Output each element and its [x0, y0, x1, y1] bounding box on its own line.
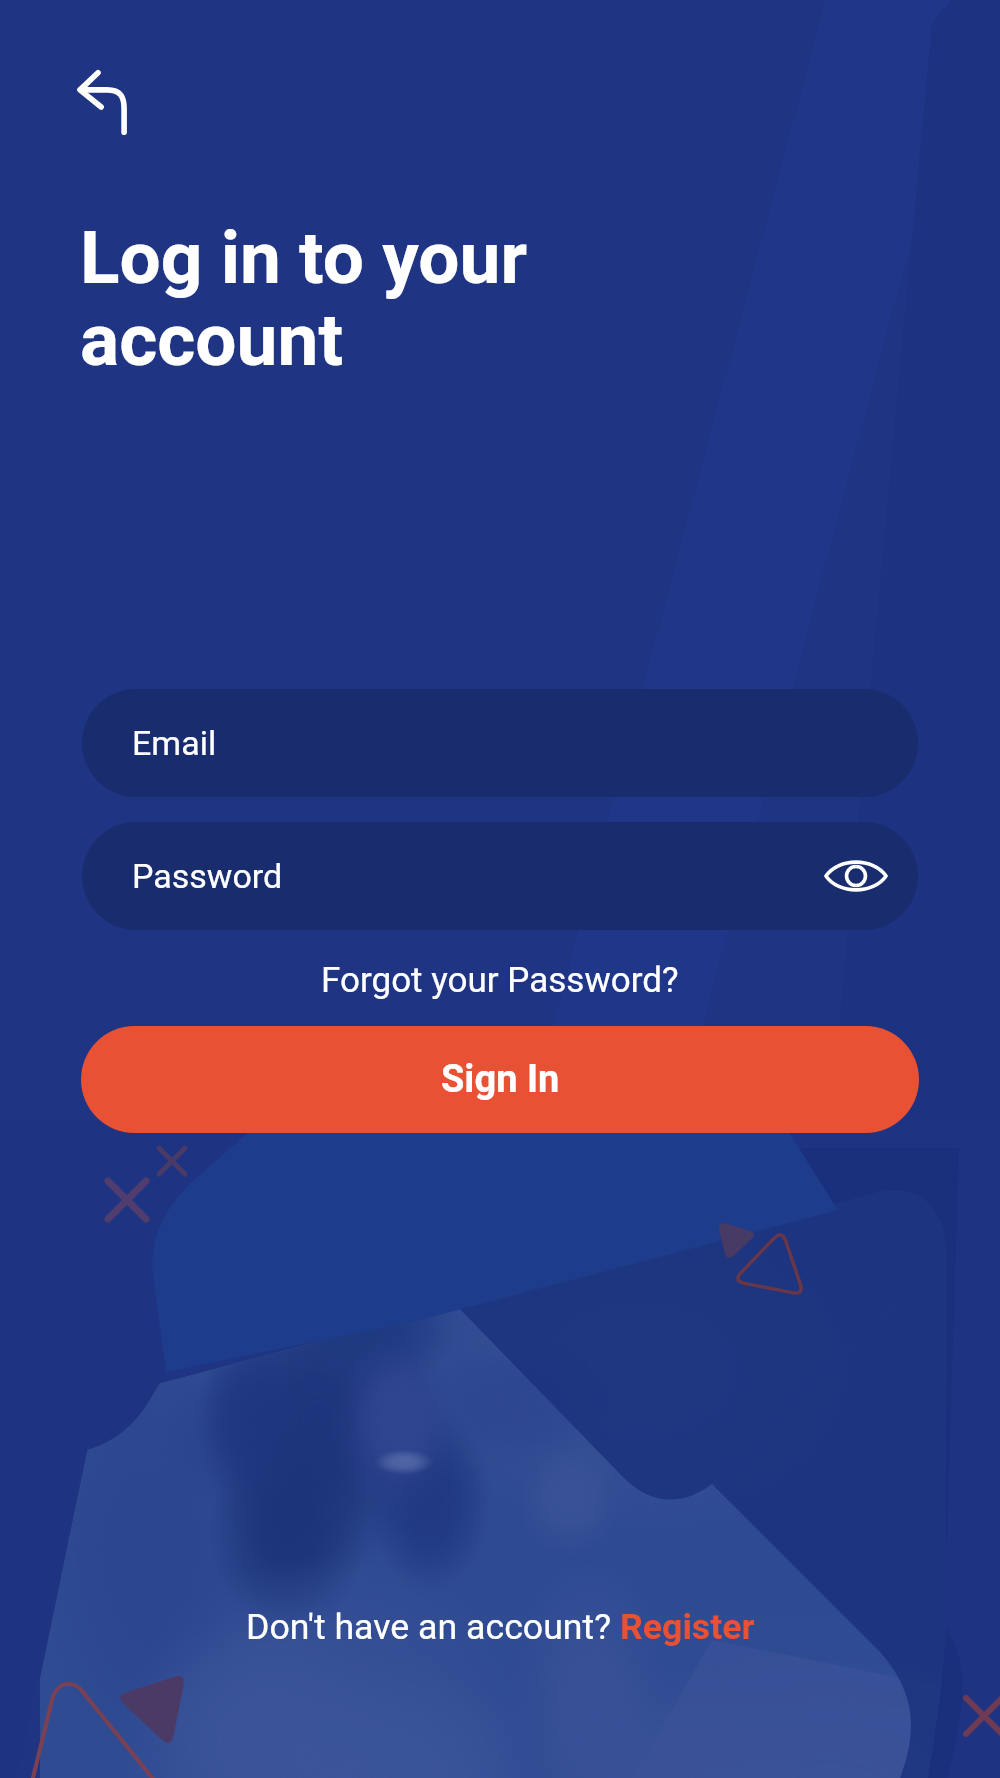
staticText: Password	[132, 856, 283, 896]
staticText: Sign In	[441, 1057, 560, 1102]
button[interactable]: Forgot your Password?	[307, 952, 693, 1009]
button[interactable]: Email	[82, 689, 918, 797]
button[interactable]: Password	[82, 822, 918, 930]
button[interactable]: Back	[62, 48, 152, 138]
button[interactable]: Show password	[820, 840, 892, 912]
staticText: Log in to your account	[80, 215, 528, 383]
button[interactable]: Sign In	[81, 1026, 919, 1133]
staticText: Email	[132, 723, 217, 763]
button[interactable]: Don't have an account? Register	[232, 1598, 769, 1656]
